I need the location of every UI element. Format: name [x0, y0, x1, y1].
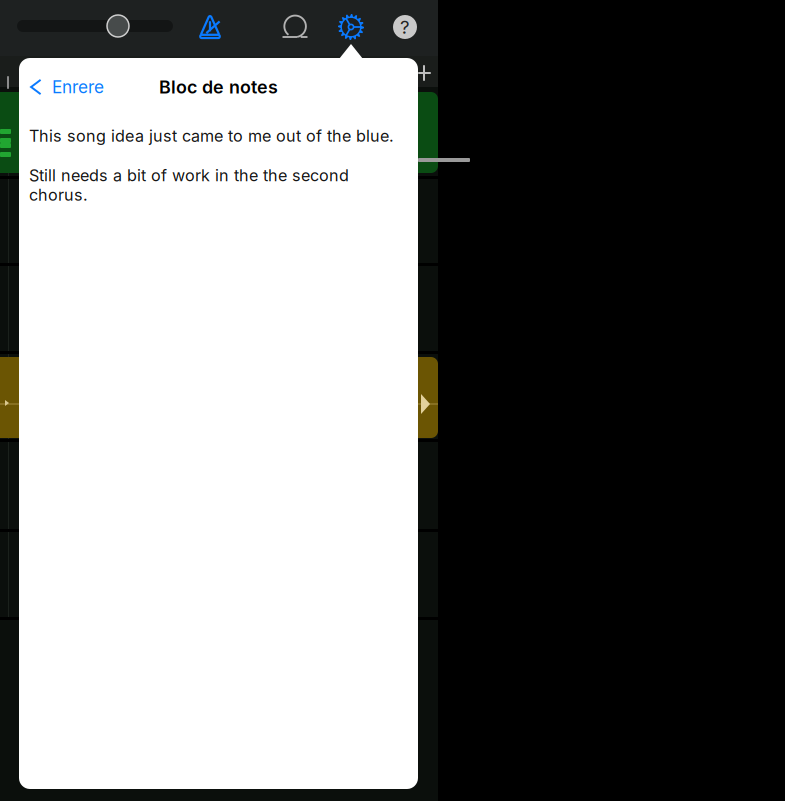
- staticText: Still needs a bit of work in the the sec…: [29, 165, 349, 204]
- button[interactable]: Master volume: [17, 15, 173, 37]
- button[interactable]: Loop browser: [282, 14, 308, 40]
- button[interactable]: Settings: [338, 14, 364, 40]
- button[interactable]: Help: [393, 15, 417, 39]
- staticText: ?: [400, 16, 410, 38]
- staticText: This song idea just came to me out of th…: [29, 126, 394, 145]
- staticText: Enrere: [52, 77, 104, 97]
- button[interactable]: Metronome: [197, 14, 223, 40]
- staticText: Bloc de notes: [159, 76, 278, 98]
- button[interactable]: Enrere: [19, 58, 114, 116]
- button[interactable]: Add track: [414, 58, 438, 86]
